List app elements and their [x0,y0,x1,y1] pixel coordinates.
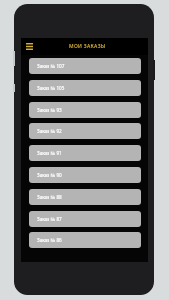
button[interactable]: Заказ № 92 [29,123,141,139]
staticText: Заказ № 92 [37,128,62,134]
button[interactable]: Заказ № 91 [29,145,141,161]
staticText: Заказ № 105 [37,85,65,91]
button[interactable]: Заказ № 107 [29,58,141,74]
staticText: Заказ № 93 [37,107,62,113]
button[interactable]: Заказ № 105 [29,80,141,96]
staticText: Заказ № 91 [37,150,62,156]
button[interactable]: Заказ № 90 [29,167,141,183]
staticText: МОИ ЗАКАЗЫ [69,43,106,50]
button[interactable]: Заказ № 88 [29,189,141,205]
staticText: Заказ № 107 [37,63,65,69]
button[interactable]: Заказ № 87 [29,211,141,227]
staticText: Заказ № 86 [37,237,62,243]
button[interactable]: Open navigation menu [24,38,35,55]
button[interactable]: Заказ № 86 [29,232,141,248]
staticText: Заказ № 90 [37,172,62,178]
staticText: Заказ № 88 [37,194,62,200]
button[interactable]: Заказ № 93 [29,102,141,118]
staticText: Заказ № 87 [37,216,62,222]
